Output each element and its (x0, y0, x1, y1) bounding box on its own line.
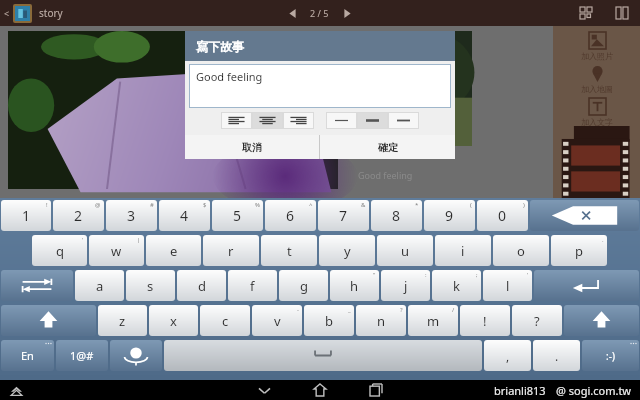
staticText: ! (483, 312, 487, 330)
button[interactable]: Large text (388, 112, 419, 129)
button[interactable]: Hide keyboard (6, 380, 26, 400)
button[interactable]: , (484, 340, 531, 371)
button[interactable]: Page layout (612, 3, 632, 23)
button[interactable]: 8 (371, 200, 422, 231)
button[interactable]: Align right (283, 112, 314, 129)
button[interactable]: o (493, 235, 549, 266)
staticText: % (255, 201, 260, 209)
button[interactable]: r (203, 235, 259, 266)
button[interactable]: d (177, 270, 226, 301)
staticText: 1 (22, 206, 31, 225)
staticText: , (506, 348, 510, 364)
button[interactable]: y (319, 235, 375, 266)
staticText: _ (348, 306, 351, 314)
button[interactable]: Shift (564, 305, 639, 336)
button[interactable]: x (149, 305, 198, 336)
button[interactable]: Enter (534, 270, 639, 301)
button[interactable]: l (483, 270, 532, 301)
button[interactable]: m (408, 305, 458, 336)
staticText: " (373, 271, 376, 279)
button[interactable]: z (98, 305, 147, 336)
button[interactable]: Align center (252, 112, 283, 129)
staticText: z (119, 312, 126, 330)
button[interactable]: 確定 (320, 135, 455, 159)
staticText: g (300, 277, 308, 295)
staticText: j (404, 277, 408, 295)
button[interactable]: . (533, 340, 580, 371)
staticText: o (517, 242, 525, 260)
button[interactable]: :-) (582, 340, 639, 371)
staticText: ? (400, 306, 403, 314)
staticText: w (111, 242, 122, 260)
button[interactable]: Previous page (284, 5, 300, 21)
button[interactable]: b (304, 305, 354, 336)
button[interactable]: p (551, 235, 607, 266)
button[interactable]: t (261, 235, 317, 266)
staticText: t (287, 242, 292, 260)
button[interactable]: Tab (1, 270, 73, 301)
staticText: k (453, 277, 460, 295)
button[interactable]: Next page (339, 5, 355, 21)
button[interactable]: f (228, 270, 277, 301)
button[interactable]: Small text (326, 112, 357, 129)
button[interactable]: Shift (1, 305, 96, 336)
staticText: @ sogi.com.tw (556, 383, 632, 398)
button[interactable]: Align left (221, 112, 252, 129)
button[interactable]: En (1, 340, 54, 371)
button[interactable]: k (432, 270, 481, 301)
button[interactable]: w (89, 235, 144, 266)
button[interactable]: 0 (477, 200, 528, 231)
button[interactable]: 9 (424, 200, 475, 231)
button[interactable]: Voice input (110, 340, 162, 371)
button[interactable]: g (279, 270, 328, 301)
button[interactable]: j (381, 270, 430, 301)
button[interactable]: Grid layout (576, 3, 596, 23)
staticText: m (427, 312, 440, 330)
button[interactable]: Back (251, 380, 277, 400)
button[interactable]: n (356, 305, 406, 336)
staticText: p (575, 242, 583, 260)
staticText: Good feeling (358, 169, 413, 181)
staticText: brianli813 (494, 383, 546, 398)
button[interactable]: Space (164, 340, 482, 371)
button[interactable]: c (200, 305, 250, 336)
button[interactable]: ! (460, 305, 510, 336)
staticText: ' (527, 271, 529, 279)
button[interactable]: 2 (53, 200, 104, 231)
button[interactable]: 1 (1, 200, 51, 231)
staticText: c (222, 312, 229, 330)
button[interactable]: Home (307, 380, 333, 400)
button[interactable]: s (126, 270, 175, 301)
button[interactable]: 加入地圖 (581, 65, 613, 94)
button[interactable]: Medium text (357, 112, 388, 129)
button[interactable]: 6 (265, 200, 316, 231)
staticText: & (361, 201, 366, 209)
button[interactable]: v (252, 305, 302, 336)
button[interactable]: Album (15, 6, 30, 21)
button[interactable]: a (75, 270, 124, 301)
button[interactable]: 7 (318, 200, 369, 231)
button[interactable]: 3 (106, 200, 157, 231)
button[interactable]: ? (512, 305, 562, 336)
button[interactable]: 1@# (56, 340, 108, 371)
staticText: / (452, 306, 455, 314)
button[interactable]: Backspace (530, 200, 639, 231)
button[interactable]: 取消 (185, 135, 319, 159)
button[interactable]: 加入文字 (581, 98, 613, 127)
button[interactable]: u (377, 235, 433, 266)
button[interactable]: 加入照片 (581, 32, 613, 61)
button[interactable]: 4 (159, 200, 210, 231)
button[interactable]: h (330, 270, 379, 301)
button[interactable]: i (435, 235, 491, 266)
staticText: y (344, 242, 351, 260)
staticText: h (350, 277, 359, 295)
staticText: 2 (74, 206, 83, 225)
staticText: . (555, 348, 559, 364)
staticText: 2 / 5 (310, 7, 329, 19)
button[interactable]: q (32, 235, 87, 266)
button[interactable]: Recent apps (363, 380, 389, 400)
button[interactable]: 5 (212, 200, 263, 231)
button[interactable]: Good feeling (196, 69, 451, 108)
staticText: x (170, 312, 177, 330)
button[interactable]: e (146, 235, 201, 266)
